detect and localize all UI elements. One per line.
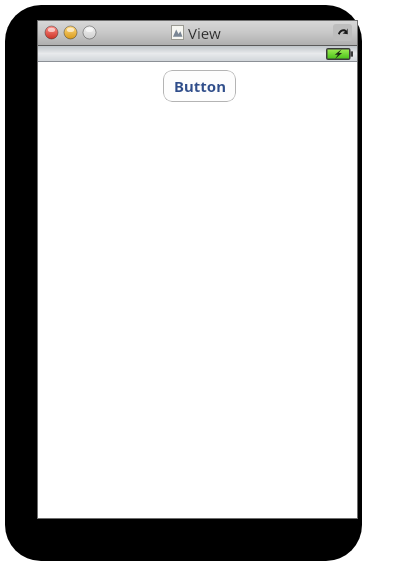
staticText: Button — [174, 76, 226, 96]
button[interactable]: Toggle toolbar — [333, 24, 352, 41]
button[interactable]: Window control — [45, 26, 58, 39]
button[interactable]: Window control — [83, 26, 96, 39]
button[interactable]: Button — [163, 70, 236, 102]
button[interactable]: Window control — [64, 26, 77, 39]
staticText: View — [188, 23, 221, 43]
